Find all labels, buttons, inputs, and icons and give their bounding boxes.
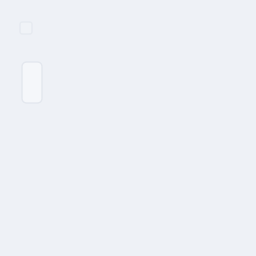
button[interactable]: Placeholder card <box>22 62 42 103</box>
button[interactable]: Placeholder icon <box>20 22 32 34</box>
